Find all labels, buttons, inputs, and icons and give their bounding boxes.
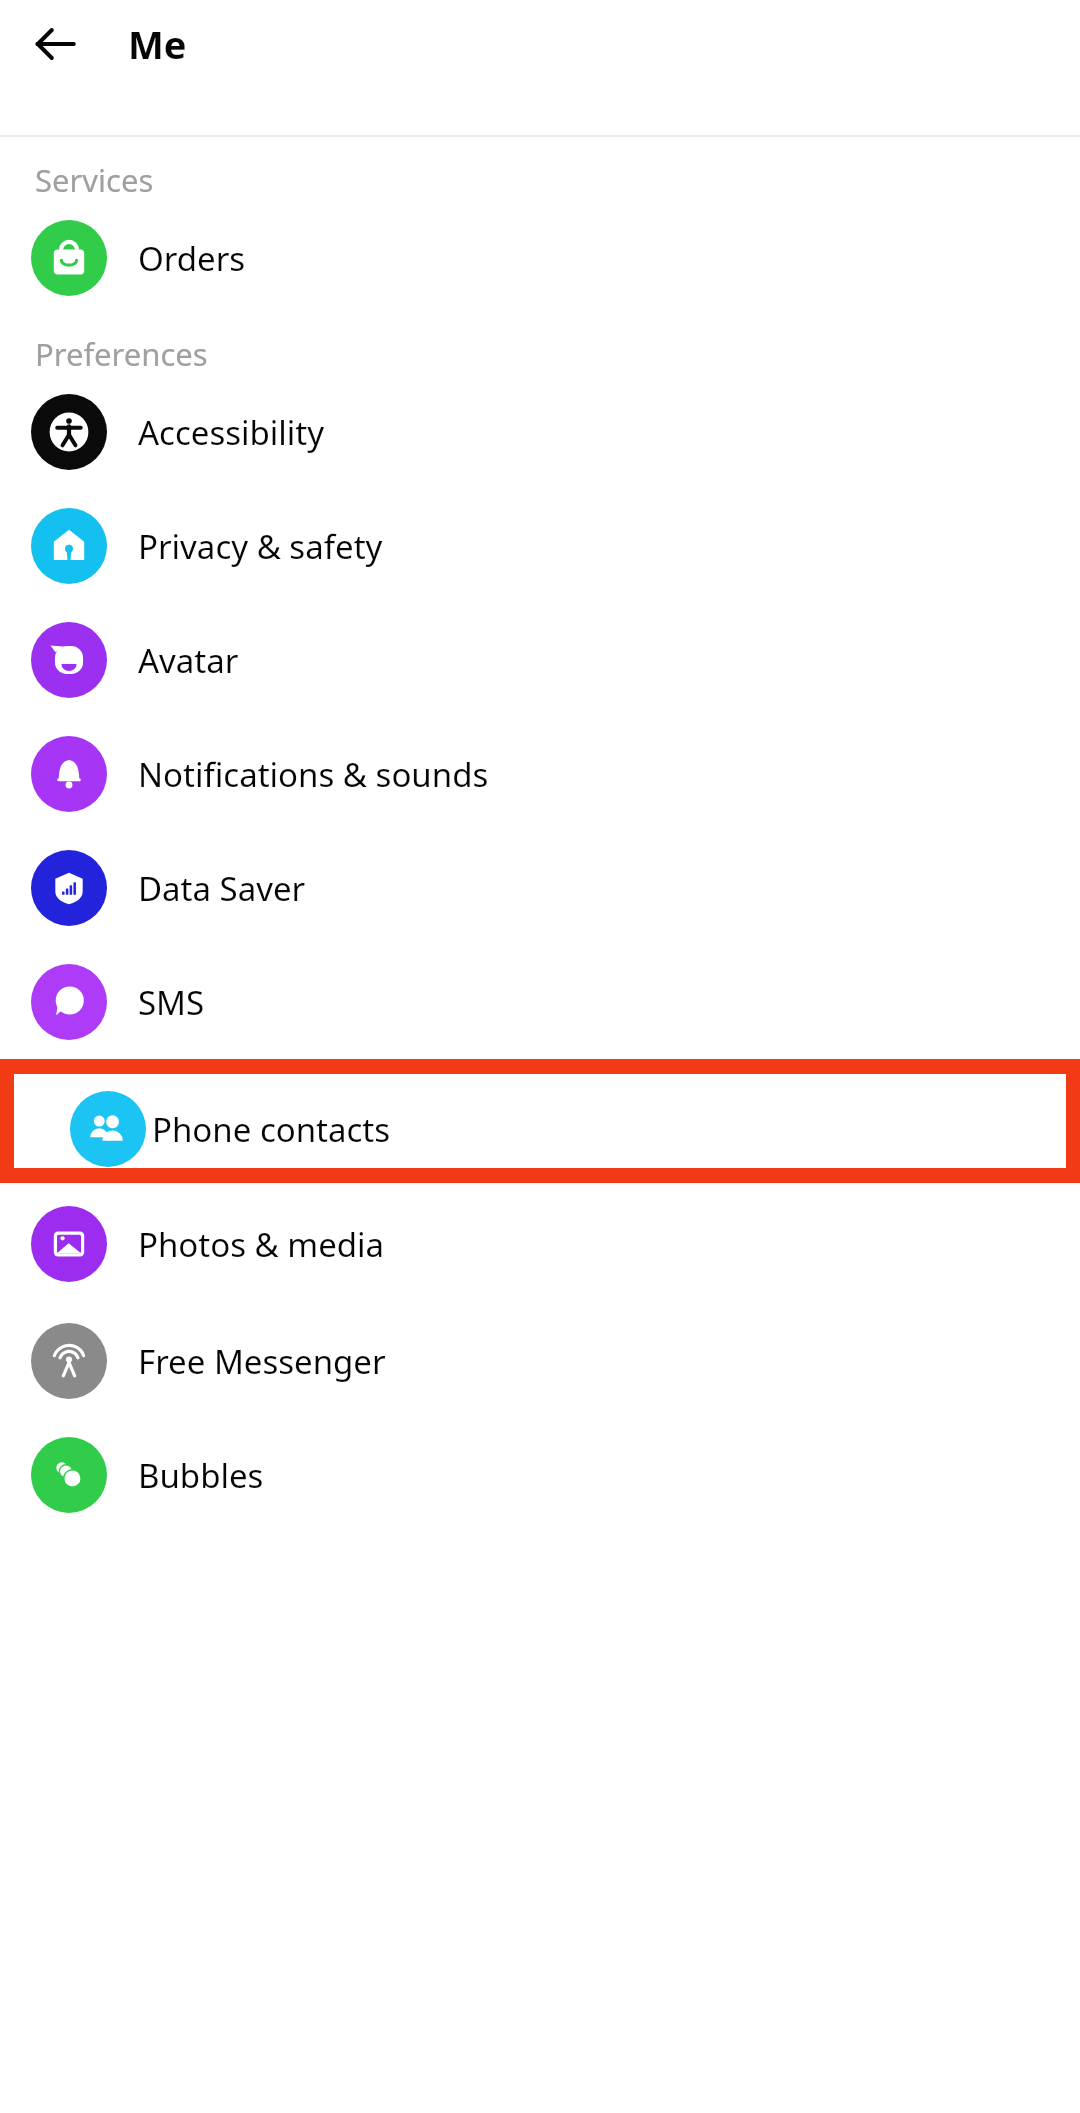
staticText: Phone contacts [152, 1107, 391, 1152]
staticText: Accessibility [138, 410, 325, 455]
staticText: Preferences [35, 333, 208, 375]
staticText: Data Saver [138, 866, 306, 911]
staticText: Orders [138, 236, 246, 281]
button[interactable]: Data Saver [0, 831, 1080, 945]
button[interactable]: Accessibility [0, 375, 1080, 489]
button[interactable]: Avatar [0, 603, 1080, 717]
button[interactable]: Back [24, 13, 86, 75]
button[interactable]: SMS [0, 945, 1080, 1059]
button[interactable]: Privacy & safety [0, 489, 1080, 603]
staticText: Free Messenger [138, 1339, 386, 1384]
staticText: Notifications & sounds [138, 752, 489, 797]
staticText: Services [35, 159, 154, 201]
button[interactable]: Bubbles [0, 1418, 1080, 1532]
button[interactable]: Photos & media [0, 1183, 1080, 1304]
button[interactable]: Notifications & sounds [0, 717, 1080, 831]
button[interactable]: Free Messenger [0, 1304, 1080, 1418]
staticText: Photos & media [138, 1222, 385, 1267]
staticText: Bubbles [138, 1453, 264, 1498]
button[interactable]: Orders [0, 201, 1080, 315]
staticText: Privacy & safety [138, 524, 383, 569]
staticText: Avatar [138, 638, 239, 683]
staticText: Me [128, 18, 187, 70]
staticText: SMS [138, 980, 205, 1025]
